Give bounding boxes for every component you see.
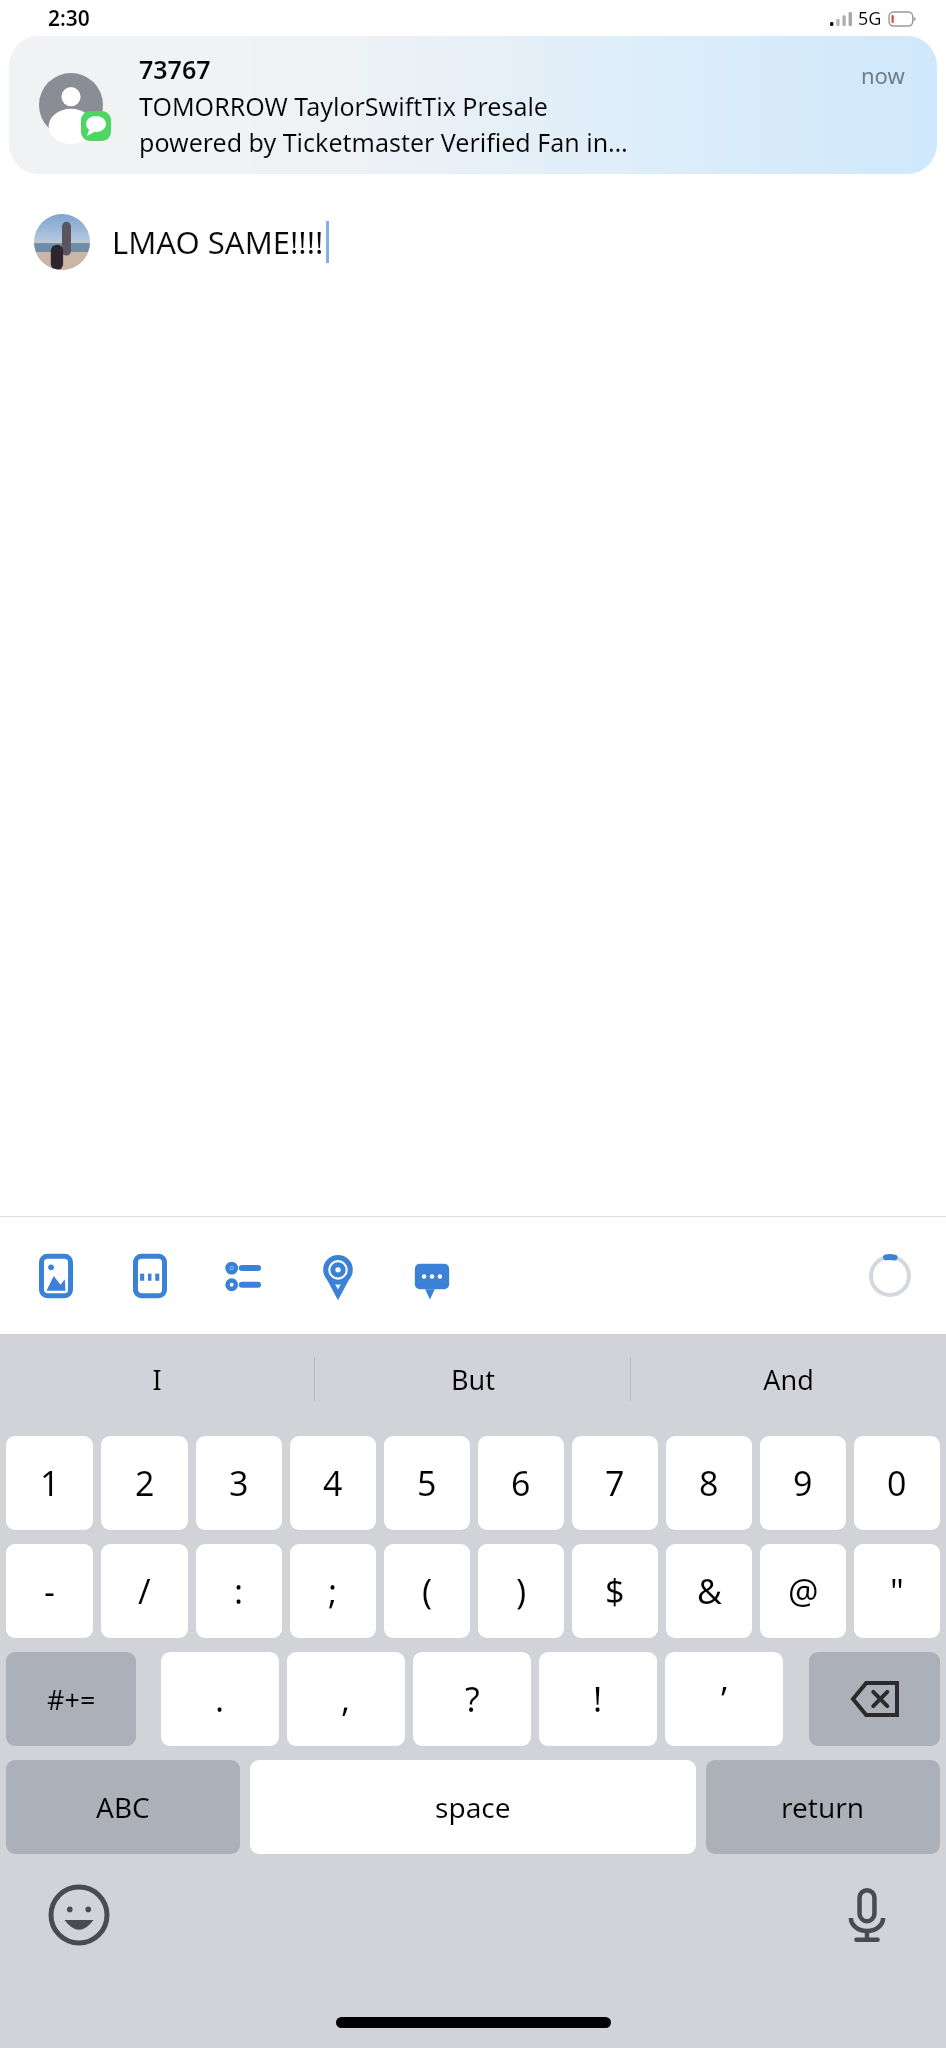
staticText: & — [697, 1568, 722, 1614]
button[interactable]: 9 — [760, 1436, 846, 1530]
button[interactable]: / — [101, 1544, 188, 1638]
staticText: 5 — [417, 1460, 437, 1506]
button[interactable]: , — [287, 1652, 405, 1746]
staticText: ’ — [721, 1676, 727, 1722]
button[interactable]: More — [866, 1252, 914, 1300]
staticText: 8 — [699, 1460, 719, 1506]
button[interactable]: ) — [478, 1544, 564, 1638]
staticText: ; — [328, 1568, 338, 1614]
staticText: I — [152, 1361, 162, 1398]
button[interactable]: 0 — [854, 1436, 940, 1530]
button[interactable]: @ — [760, 1544, 846, 1638]
staticText: 7 — [605, 1460, 625, 1506]
button[interactable]: $ — [572, 1544, 658, 1638]
staticText: powered by Ticketmaster Verified Fan in… — [139, 125, 628, 159]
staticText: 2 — [135, 1460, 155, 1506]
staticText: TOMORROW TaylorSwiftTix Presale — [139, 89, 548, 123]
staticText: 73767 — [139, 52, 211, 86]
staticText: now — [861, 60, 905, 90]
button[interactable]: And — [631, 1334, 946, 1424]
staticText: 0 — [887, 1460, 907, 1506]
staticText: space — [435, 1788, 511, 1826]
staticText: : — [234, 1568, 244, 1614]
staticText: 5G — [858, 6, 882, 31]
button[interactable]: 5 — [384, 1436, 470, 1530]
staticText: " — [890, 1568, 904, 1614]
button[interactable]: Message effects — [406, 1250, 458, 1302]
staticText: And — [763, 1361, 814, 1398]
staticText: / — [138, 1568, 151, 1614]
staticText: - — [44, 1568, 55, 1614]
button[interactable]: 2 — [101, 1436, 188, 1530]
staticText: 9 — [793, 1460, 813, 1506]
button[interactable]: 7 — [572, 1436, 658, 1530]
button[interactable]: 73767 — [9, 36, 937, 174]
button[interactable]: ABC — [6, 1760, 240, 1854]
button[interactable]: 6 — [478, 1436, 564, 1530]
staticText: ? — [465, 1676, 480, 1722]
button[interactable]: Dictation — [836, 1884, 898, 1946]
button[interactable]: 8 — [666, 1436, 752, 1530]
staticText: , — [341, 1676, 351, 1722]
staticText: 6 — [511, 1460, 531, 1506]
staticText: ( — [422, 1568, 433, 1614]
staticText: 2:30 — [48, 4, 90, 33]
button[interactable]: But — [315, 1334, 630, 1424]
button[interactable]: 1 — [6, 1436, 93, 1530]
staticText: @ — [788, 1568, 819, 1614]
button[interactable]: Backspace — [809, 1652, 940, 1746]
button[interactable]: space — [250, 1760, 696, 1854]
button[interactable]: " — [854, 1544, 940, 1638]
staticText: ! — [593, 1676, 603, 1722]
button[interactable]: Poll — [218, 1250, 270, 1302]
button[interactable]: - — [6, 1544, 93, 1638]
button[interactable]: return — [706, 1760, 940, 1854]
button[interactable]: 3 — [196, 1436, 282, 1530]
button[interactable]: . — [161, 1652, 279, 1746]
button[interactable]: ? — [413, 1652, 531, 1746]
staticText: 4 — [323, 1460, 343, 1506]
button[interactable]: I — [0, 1334, 314, 1424]
button[interactable]: Emoji — [48, 1884, 110, 1946]
button[interactable]: ( — [384, 1544, 470, 1638]
staticText: ABC — [96, 1788, 150, 1826]
button[interactable]: : — [196, 1544, 282, 1638]
staticText: 1 — [40, 1460, 60, 1506]
staticText: $ — [605, 1568, 625, 1614]
button[interactable]: ; — [290, 1544, 376, 1638]
button[interactable]: ’ — [665, 1652, 783, 1746]
staticText: return — [781, 1788, 865, 1826]
button[interactable]: 4 — [290, 1436, 376, 1530]
staticText: 3 — [229, 1460, 249, 1506]
staticText: #+= — [47, 1681, 96, 1718]
button[interactable]: GIF — [124, 1250, 176, 1302]
staticText: ) — [516, 1568, 527, 1614]
button[interactable]: Photos — [30, 1250, 82, 1302]
button[interactable]: Location — [312, 1250, 364, 1302]
staticText: . — [215, 1676, 225, 1722]
button[interactable]: ! — [539, 1652, 657, 1746]
staticText: But — [451, 1361, 495, 1398]
staticText: LMAO SAME!!!! — [112, 221, 324, 263]
button[interactable]: & — [666, 1544, 752, 1638]
button[interactable]: #+= — [6, 1652, 136, 1746]
